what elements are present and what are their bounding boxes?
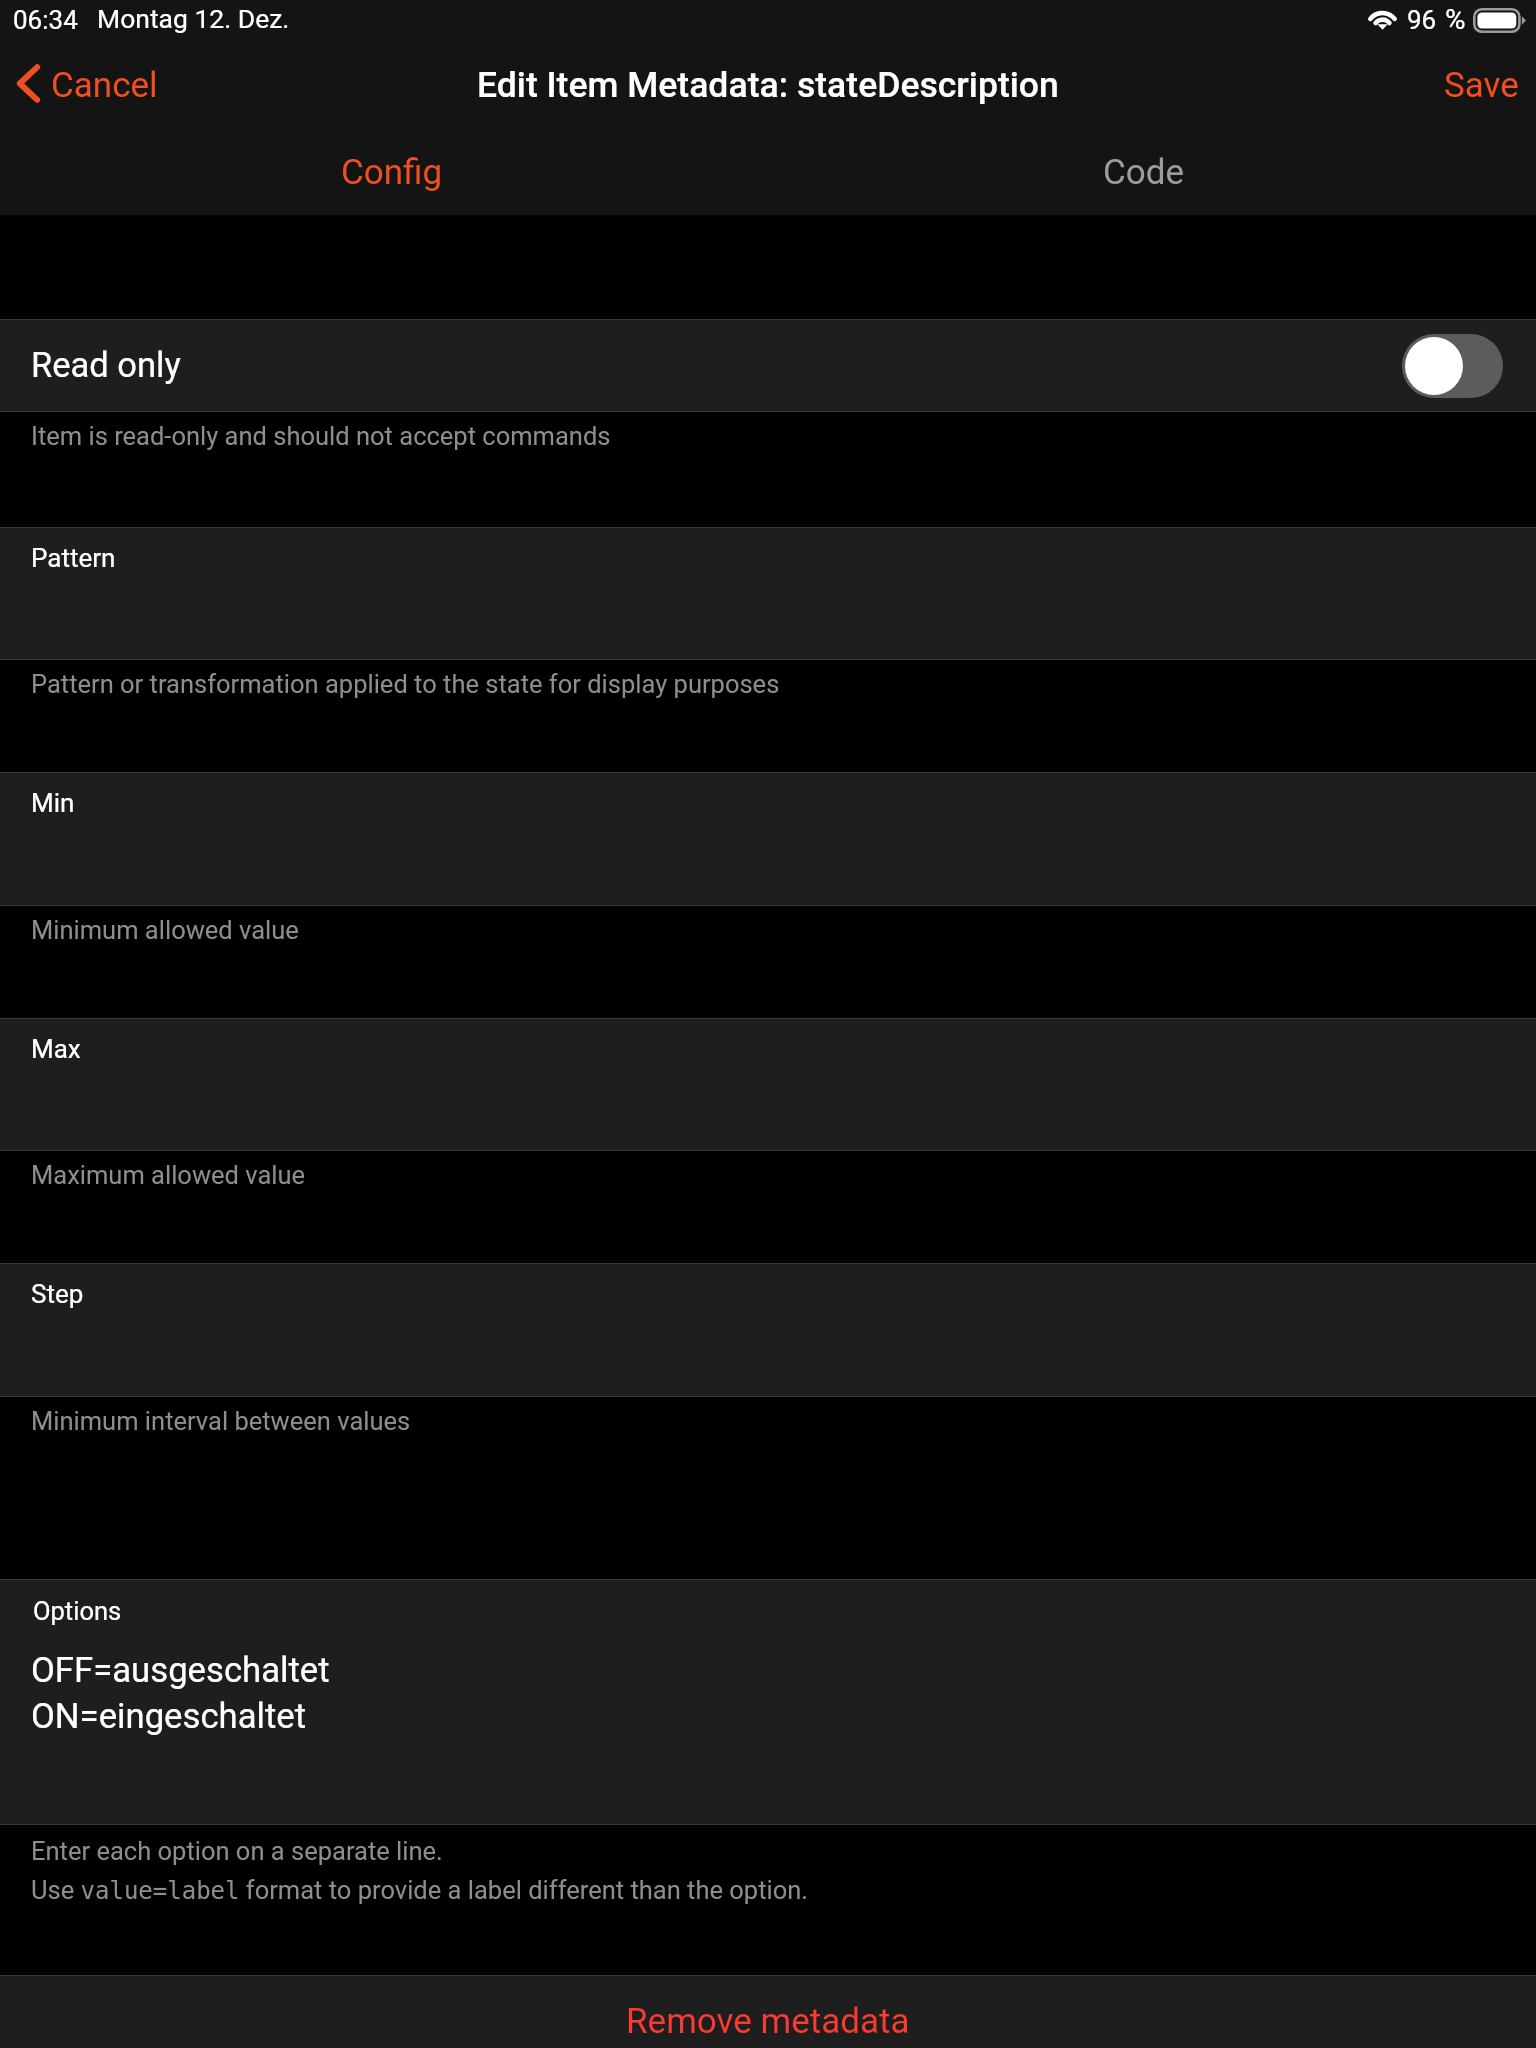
staticText: Minimum interval between values [31,1406,411,1436]
button[interactable]: Step [0,1264,1536,1396]
button[interactable]: Min [0,773,1536,905]
staticText: Edit Item Metadata: stateDescription [477,64,1059,106]
staticText: Read only [31,345,181,385]
button[interactable]: Remove metadata [0,1976,1536,2048]
staticText: Cancel [51,65,158,106]
staticText: Save [1444,65,1519,106]
button[interactable]: Options [0,1580,1536,1824]
button[interactable]: Config [16,130,768,215]
staticText: Item is read-only and should not accept … [31,421,611,451]
button[interactable]: Code [768,130,1520,215]
staticText: Min [31,788,75,818]
staticText: Max [31,1034,81,1064]
button[interactable]: Read only toggle [1402,334,1503,398]
staticText: Maximum allowed value [31,1160,306,1190]
staticText: Step [31,1279,84,1309]
staticText: Options [33,1596,122,1626]
staticText: Montag 12. Dez. [97,3,290,34]
staticText: Enter each option on a separate line. [31,1836,443,1866]
staticText: % [1445,3,1466,36]
button[interactable]: Pattern [0,528,1536,659]
staticText: Pattern [31,543,116,573]
staticText: Code [1103,152,1185,193]
button[interactable]: Read only [0,320,1536,411]
button[interactable]: Save [1422,51,1536,120]
button[interactable]: Back [0,51,178,120]
button[interactable]: Max [0,1019,1536,1150]
staticText: Config [341,152,443,193]
staticText: Remove metadata [626,2001,910,2042]
other: Back [17,65,40,102]
staticText: Minimum allowed value [31,915,299,945]
staticText: Use value=label format to provide a labe… [31,1875,809,1905]
staticText: OFF=ausgeschaltet ON=eingeschaltet [31,1650,330,1737]
staticText: Pattern or transformation applied to the… [31,669,780,699]
staticText: 06:34 [13,5,78,35]
staticText: 96 [1407,5,1437,35]
